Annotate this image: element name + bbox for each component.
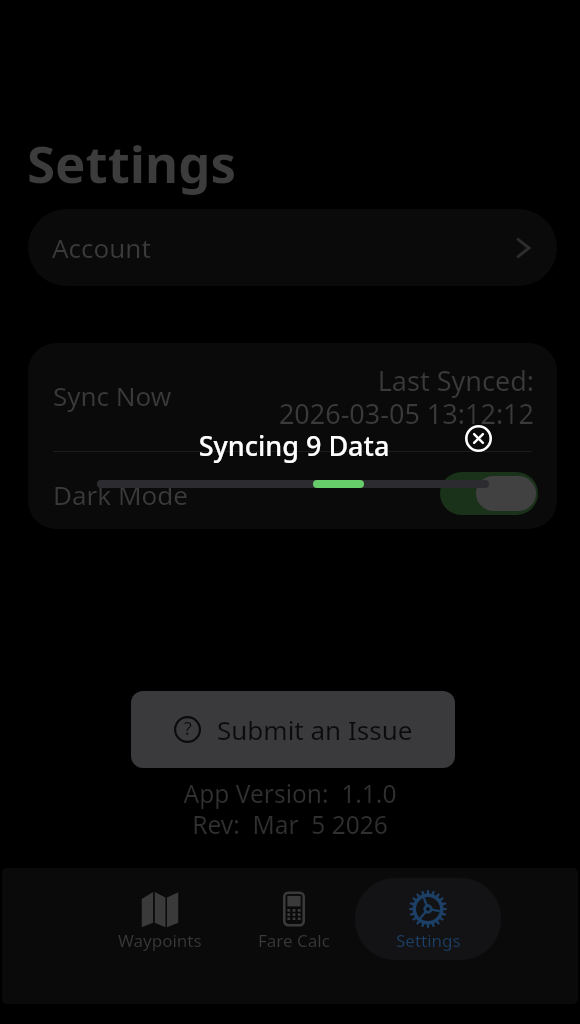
button[interactable]: Dark Mode bbox=[28, 452, 557, 529]
staticText: Submit an Issue bbox=[217, 712, 413, 747]
staticText: Settings bbox=[396, 929, 461, 952]
staticText: Waypoints bbox=[118, 929, 202, 952]
staticText: ? bbox=[184, 716, 192, 741]
staticText: Syncing 9 Data bbox=[4, 427, 580, 464]
button[interactable] bbox=[440, 472, 538, 515]
button[interactable]: Waypoints bbox=[99, 878, 221, 960]
button[interactable]: Account bbox=[28, 209, 557, 286]
button[interactable]: Settings bbox=[355, 878, 501, 960]
button[interactable]: Fare Calc bbox=[233, 878, 355, 960]
button[interactable]: ? bbox=[131, 691, 455, 768]
staticText: Last Synced: 2026-03-05 13:12:12 bbox=[278, 362, 534, 432]
staticText: Account bbox=[52, 230, 151, 265]
staticText: App Version: 1.1.0 Rev: Mar 5 2026 bbox=[0, 777, 580, 841]
staticText: Sync Now bbox=[53, 378, 172, 413]
staticText: Fare Calc bbox=[258, 929, 330, 952]
button[interactable]: Sync Now bbox=[28, 343, 557, 451]
staticText: Settings bbox=[27, 128, 237, 197]
button[interactable]: Cancel sync bbox=[465, 425, 492, 452]
staticText: Dark Mode bbox=[53, 477, 188, 512]
